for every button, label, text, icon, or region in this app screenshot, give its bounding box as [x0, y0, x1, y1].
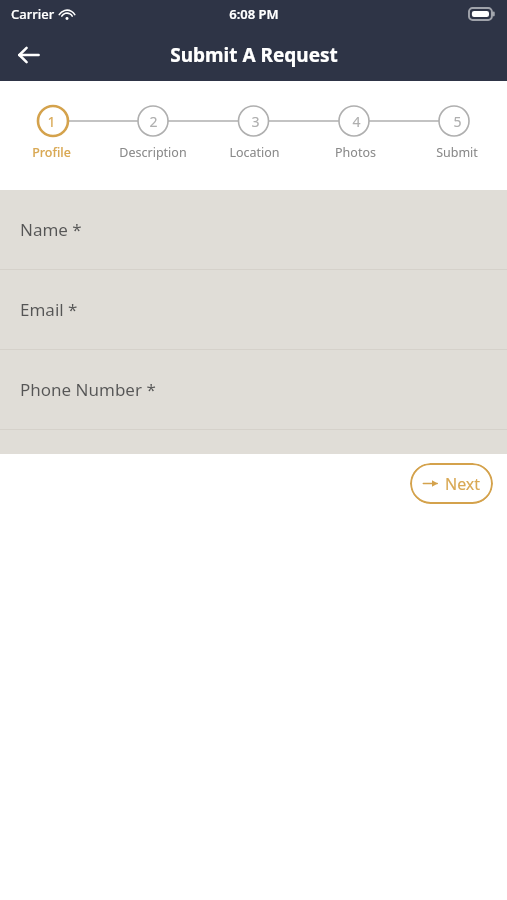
staticText: Name *: [20, 218, 82, 241]
button[interactable]: Name *: [0, 190, 507, 270]
staticText: Description: [119, 144, 187, 161]
button[interactable]: 2: [102, 81, 204, 190]
staticText: Carrier: [11, 5, 55, 23]
staticText: 1: [47, 112, 56, 131]
staticText: 6:08 PM: [229, 5, 279, 23]
button[interactable]: Email *: [0, 270, 507, 350]
button[interactable]: Phone Number *: [0, 350, 507, 430]
staticText: 3: [251, 112, 260, 131]
button[interactable]: Next: [410, 463, 493, 504]
staticText: Phone Number *: [20, 378, 156, 401]
button[interactable]: 3: [204, 81, 305, 190]
button[interactable]: 4: [305, 81, 406, 190]
button[interactable]: 1: [0, 81, 102, 190]
staticText: Submit A Request: [170, 42, 338, 68]
staticText: Email *: [20, 298, 78, 321]
staticText: 2: [149, 112, 158, 131]
staticText: Submit: [436, 144, 478, 161]
staticText: 5: [453, 112, 462, 131]
staticText: Profile: [32, 144, 71, 161]
button[interactable]: 5: [406, 81, 507, 190]
staticText: 4: [352, 112, 361, 131]
button[interactable]: Back: [6, 32, 52, 78]
staticText: Location: [229, 144, 280, 161]
staticText: Next: [445, 473, 481, 495]
staticText: Photos: [335, 144, 376, 161]
